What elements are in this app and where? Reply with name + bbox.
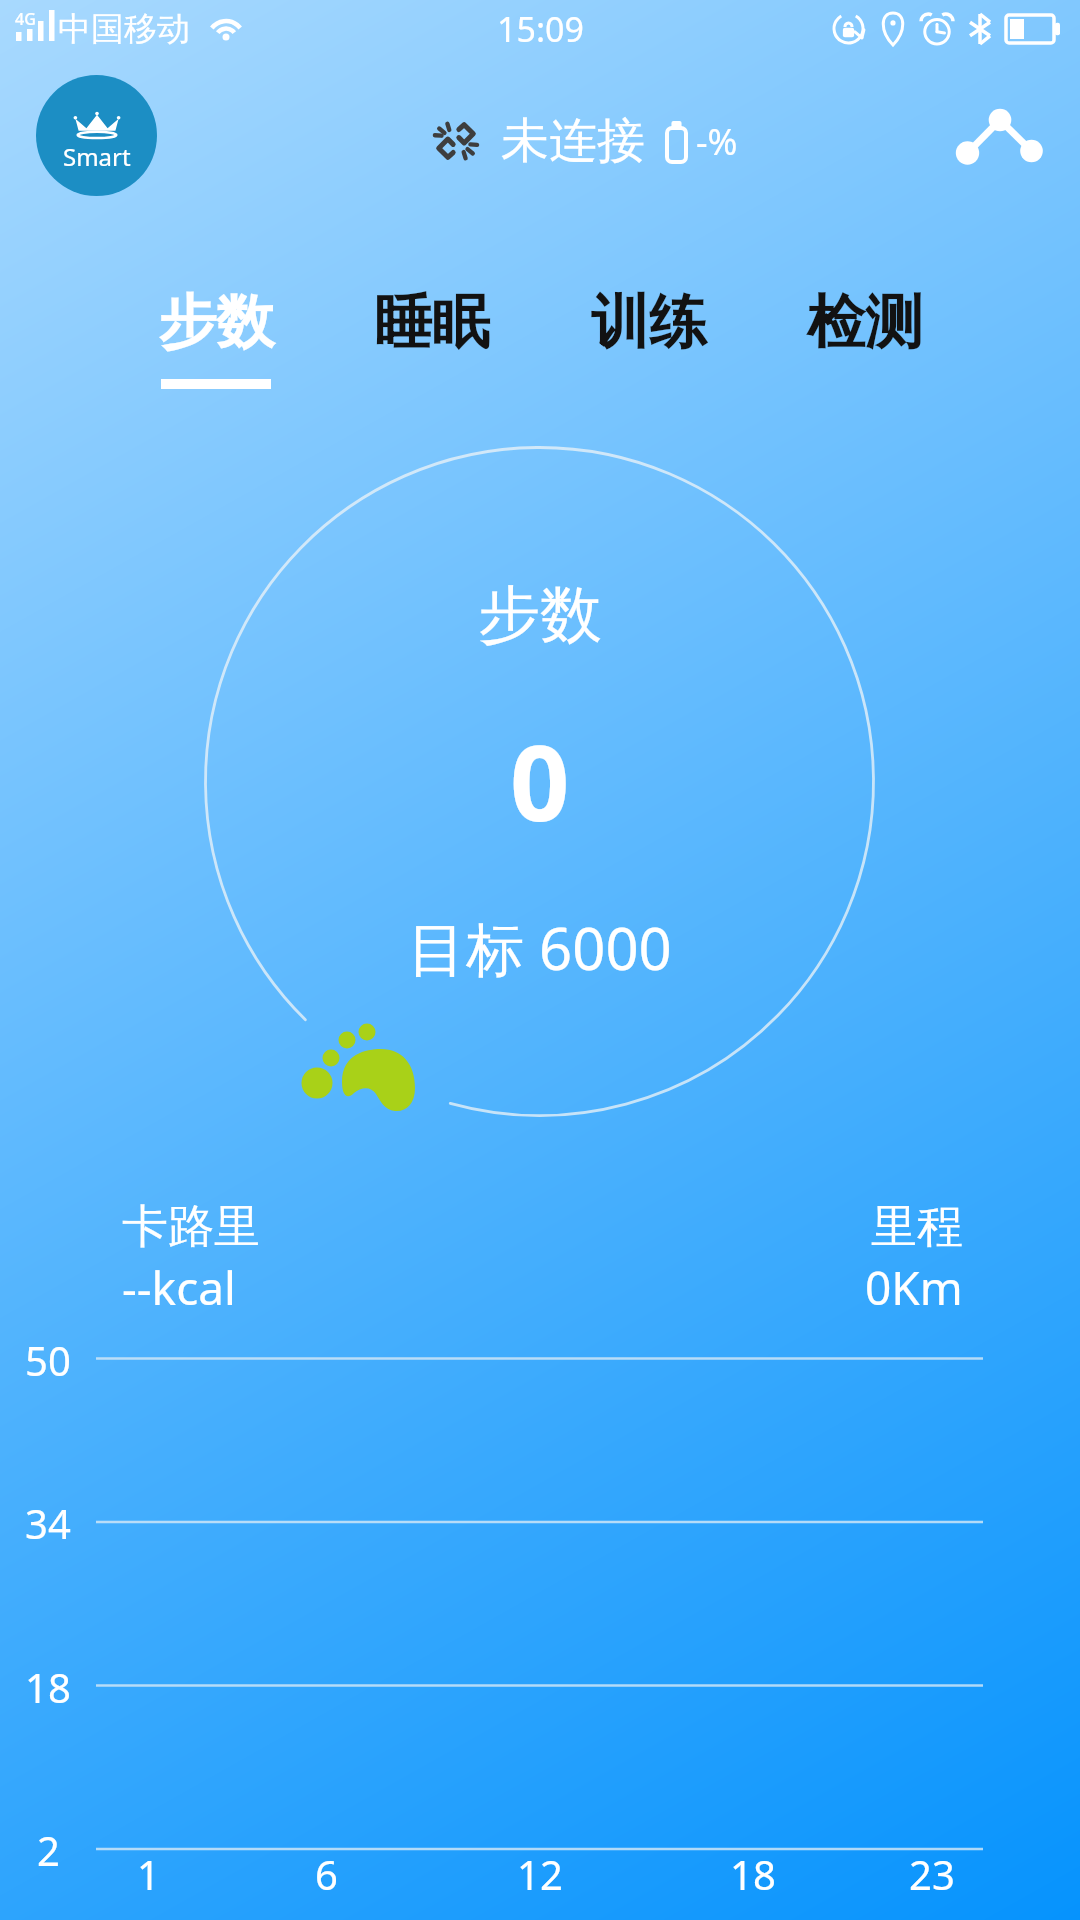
button[interactable]: 睡眠	[374, 286, 490, 379]
button[interactable]: 步数	[206, 448, 874, 1116]
staticText: -%	[696, 117, 738, 166]
button[interactable]: 步数	[158, 286, 274, 389]
staticText: 中国移动	[58, 8, 190, 50]
staticText: 1	[137, 1847, 160, 1901]
staticText: 12	[517, 1847, 563, 1901]
staticText: 18	[730, 1847, 776, 1901]
button[interactable]: Share	[944, 91, 1044, 191]
button[interactable]: 检测	[807, 286, 923, 379]
staticText: 50	[25, 1333, 71, 1387]
staticText: 6	[315, 1847, 338, 1901]
staticText: --kcal	[122, 1256, 236, 1319]
button[interactable]: 里程	[865, 1198, 963, 1319]
staticText: 15:09	[497, 6, 584, 52]
staticText: 卡路里	[122, 1198, 260, 1256]
staticText: 未连接	[501, 111, 645, 171]
staticText: 23	[909, 1847, 955, 1901]
staticText: 步数	[158, 286, 274, 359]
staticText: 睡眠	[374, 286, 490, 359]
button[interactable]: Smart logo	[36, 75, 157, 196]
button[interactable]: 训练	[591, 286, 707, 379]
staticText: 里程	[871, 1198, 963, 1256]
staticText: 0Km	[865, 1256, 963, 1319]
staticText: 步数	[478, 576, 602, 654]
staticText: 检测	[807, 286, 923, 359]
staticText: 0	[510, 710, 570, 852]
staticText: 18	[25, 1660, 71, 1714]
button[interactable]: 卡路里	[122, 1198, 260, 1319]
staticText: 34	[25, 1496, 71, 1550]
staticText: 训练	[591, 286, 707, 359]
staticText: 4G	[15, 8, 36, 30]
staticText: 目标 6000	[408, 908, 672, 987]
staticText: Smart	[63, 140, 131, 173]
staticText: 2	[37, 1823, 60, 1877]
